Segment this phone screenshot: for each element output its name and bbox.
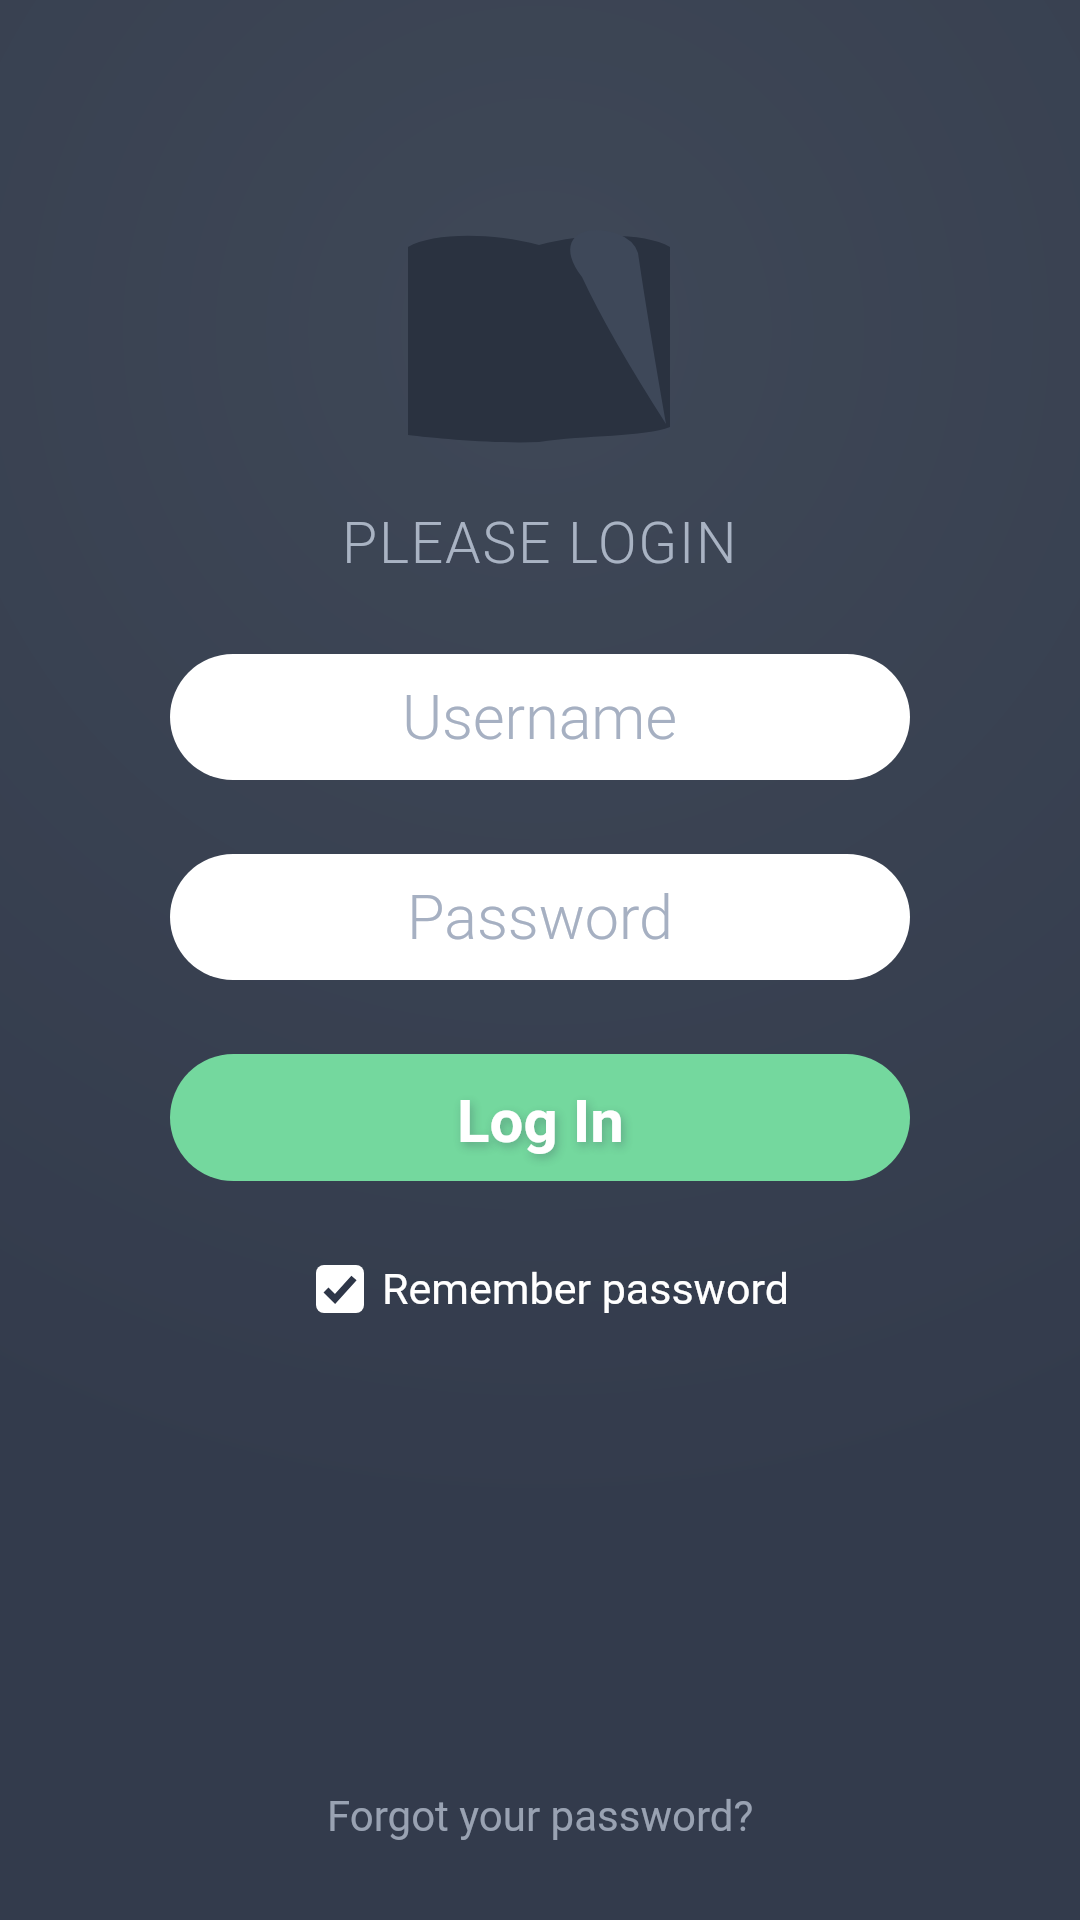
staticText: Remember password bbox=[382, 1264, 789, 1314]
button[interactable]: Forgot your password? bbox=[327, 1792, 754, 1841]
button[interactable]: Log In bbox=[170, 1054, 910, 1181]
button[interactable]: Username bbox=[170, 654, 910, 780]
staticText: Log In bbox=[457, 1086, 624, 1156]
staticText: Username bbox=[402, 682, 678, 753]
staticText: Password bbox=[407, 882, 673, 953]
button[interactable]: Password bbox=[170, 854, 910, 980]
staticText: Forgot your password? bbox=[327, 1792, 754, 1841]
button[interactable]: Remember password bbox=[316, 1264, 789, 1314]
staticText: PLEASE LOGIN bbox=[342, 510, 739, 577]
